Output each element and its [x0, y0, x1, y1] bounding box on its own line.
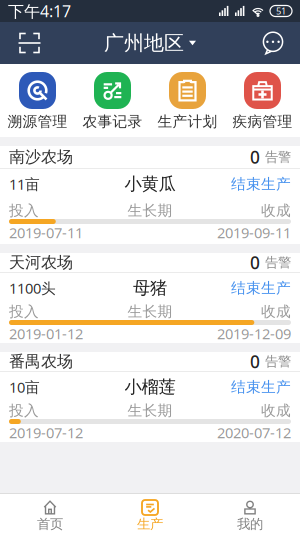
staticText: 南沙农场: [9, 147, 73, 167]
staticText: 生长期: [127, 201, 172, 219]
button[interactable]: 母猪: [0, 273, 300, 343]
staticText: 0: [250, 145, 265, 168]
staticText: 2019-09-11: [217, 223, 291, 242]
staticText: 首页: [37, 516, 63, 532]
button[interactable]: 疾病管理: [232, 72, 292, 128]
button[interactable]: 消息: [263, 33, 300, 53]
staticText: 小榴莲: [124, 376, 175, 398]
staticText: 生产: [137, 516, 163, 532]
button[interactable]: 生产计划: [157, 72, 217, 128]
staticText: 告警: [265, 353, 291, 370]
staticText: 生长期: [127, 302, 172, 320]
staticText: 1100头: [9, 278, 56, 298]
staticText: 投入: [9, 302, 39, 320]
staticText: 告警: [265, 149, 291, 165]
staticText: 生长期: [127, 401, 172, 419]
staticText: 2019-12-09: [217, 324, 291, 343]
staticText: 0: [250, 350, 265, 373]
staticText: 51: [276, 5, 286, 17]
button[interactable]: 生产: [100, 500, 200, 530]
button[interactable]: 小榴莲: [0, 372, 300, 442]
staticText: 2019-01-12: [9, 324, 83, 343]
staticText: 结束生产: [231, 175, 291, 193]
staticText: 收成: [261, 401, 291, 419]
staticText: 2019-07-11: [9, 223, 83, 242]
staticText: 番禺农场: [9, 352, 73, 371]
button[interactable]: 番禺农场: [0, 352, 300, 371]
staticText: 广州地区: [104, 31, 184, 55]
button[interactable]: 我的: [200, 500, 300, 530]
staticText: 2019-07-12: [9, 423, 83, 442]
button[interactable]: 首页: [0, 500, 100, 530]
staticText: 收成: [261, 302, 291, 320]
staticText: 生产计划: [157, 112, 217, 130]
button[interactable]: 南沙农场: [0, 146, 300, 168]
button[interactable]: 农事记录: [82, 72, 142, 128]
staticText: 下午4:17: [8, 0, 71, 22]
staticText: 结束生产: [231, 378, 291, 396]
button[interactable]: 广州地区: [104, 31, 196, 55]
staticText: 投入: [9, 401, 39, 419]
staticText: 小黄瓜: [124, 173, 175, 195]
staticText: 告警: [265, 254, 291, 271]
staticText: 溯源管理: [7, 112, 67, 130]
staticText: 11亩: [9, 174, 40, 194]
button[interactable]: 扫一扫: [0, 33, 39, 52]
staticText: 农事记录: [82, 112, 142, 130]
staticText: 结束生产: [231, 279, 291, 297]
staticText: 0: [250, 251, 265, 274]
staticText: 母猪: [133, 277, 167, 299]
staticText: 收成: [261, 201, 291, 219]
staticText: 疾病管理: [232, 112, 292, 130]
staticText: 我的: [237, 516, 263, 532]
staticText: 2020-07-12: [217, 423, 291, 442]
button[interactable]: 天河农场: [0, 253, 300, 272]
staticText: 10亩: [9, 377, 40, 397]
button[interactable]: 溯源管理: [7, 72, 67, 128]
staticText: 天河农场: [9, 253, 73, 272]
button[interactable]: 小黄瓜: [0, 169, 300, 244]
staticText: 投入: [9, 201, 39, 219]
